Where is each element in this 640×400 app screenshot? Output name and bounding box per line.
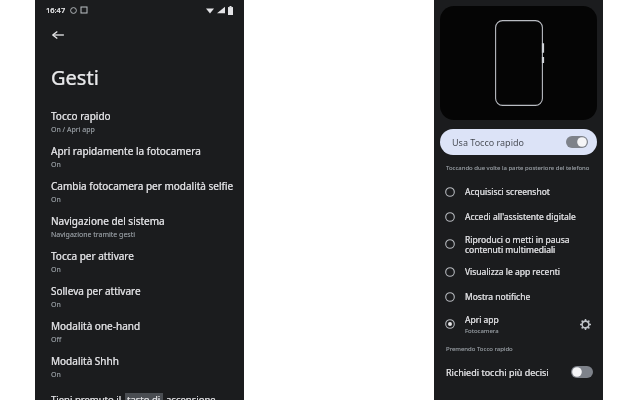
staticText: On xyxy=(51,265,61,275)
staticText: On xyxy=(51,370,61,380)
button[interactable]: Tieni premuto il xyxy=(35,389,244,400)
staticText: Riproduci o metti in pausa contenuti mul… xyxy=(465,234,570,255)
button[interactable]: Richiedi tocchi più decisi xyxy=(434,361,603,383)
staticText: 16:47 xyxy=(46,5,66,15)
button[interactable]: Modalità one-hand xyxy=(35,319,244,354)
button[interactable]: Back xyxy=(43,20,73,50)
staticText: Fotocamera xyxy=(465,327,499,335)
staticText: Gesti xyxy=(51,64,99,91)
button[interactable]: Usa Tocco rapido xyxy=(440,129,597,155)
button[interactable]: Mostra notifiche xyxy=(434,284,603,309)
staticText: Modalità one-hand xyxy=(51,319,141,333)
staticText: On xyxy=(51,160,61,170)
button[interactable]: Tocca per attivare xyxy=(35,249,244,284)
staticText: Navigazione del sistema xyxy=(51,214,165,228)
staticText: Mostra notifiche xyxy=(465,291,531,303)
button[interactable]: Visualizza le app recenti xyxy=(434,259,603,284)
staticText: Solleva per attivare xyxy=(51,284,141,298)
staticText: Cambia fotocamera per modalità selfie xyxy=(51,179,234,193)
staticText: tasto di xyxy=(127,393,161,400)
button[interactable]: Apri app xyxy=(434,309,603,339)
button[interactable]: Modalità Shhh xyxy=(35,354,244,389)
staticText: On xyxy=(51,195,61,205)
button[interactable]: Tocco rapido xyxy=(35,109,244,144)
staticText: Apri rapidamente la fotocamera xyxy=(51,144,201,158)
staticText: Usa Tocco rapido xyxy=(452,136,524,148)
button[interactable]: Solleva per attivare xyxy=(35,284,244,319)
staticText: Tocco rapido xyxy=(51,109,111,123)
staticText: Apri app xyxy=(465,314,499,326)
staticText: Acquisisci screenshot xyxy=(465,186,550,198)
staticText: Off xyxy=(51,335,62,345)
staticText: On xyxy=(51,300,61,310)
button[interactable]: Settings xyxy=(575,314,595,334)
button[interactable]: Accedi all'assistente digitale xyxy=(434,204,603,229)
button[interactable]: Navigazione del sistema xyxy=(35,214,244,249)
button[interactable]: Cambia fotocamera per modalità selfie xyxy=(35,179,244,214)
staticText: Richiedi tocchi più decisi xyxy=(446,366,549,378)
staticText: Tieni premuto il xyxy=(51,393,122,400)
staticText: accensione xyxy=(166,393,216,400)
staticText: Tocca per attivare xyxy=(51,249,134,263)
staticText: Toccando due volte la parte posteriore d… xyxy=(446,164,590,172)
staticText: Visualizza le app recenti xyxy=(465,266,560,278)
staticText: Modalità Shhh xyxy=(51,354,119,368)
staticText: Navigazione tramite gesti xyxy=(51,230,136,240)
button[interactable]: Riproduci o metti in pausa contenuti mul… xyxy=(434,229,603,259)
button[interactable]: Acquisisci screenshot xyxy=(434,179,603,204)
staticText: On / Apri app xyxy=(51,125,95,135)
staticText: Accedi all'assistente digitale xyxy=(465,211,576,223)
button[interactable]: Apri rapidamente la fotocamera xyxy=(35,144,244,179)
staticText: Premendo Tocco rapido xyxy=(446,345,513,353)
